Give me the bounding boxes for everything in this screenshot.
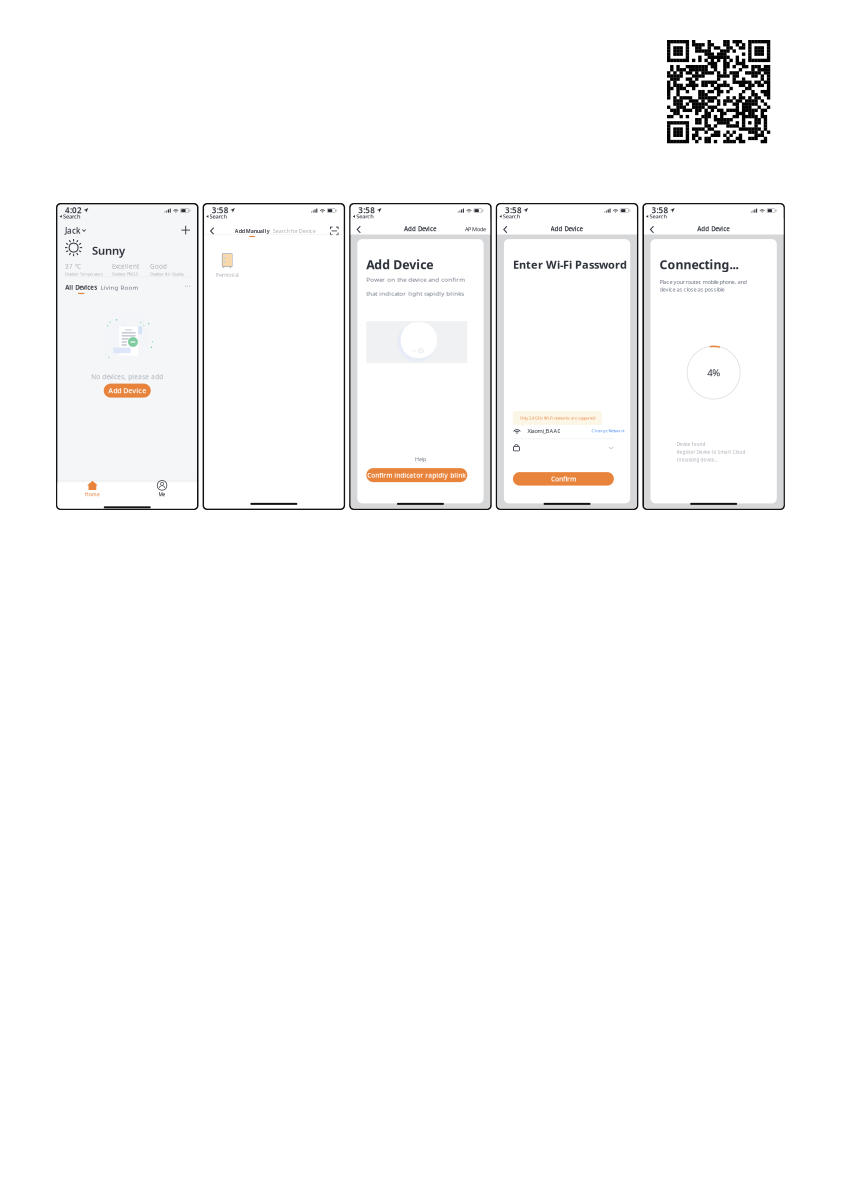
staticText: Change Network xyxy=(591,428,624,433)
staticText: Add Manually xyxy=(235,227,270,235)
button[interactable]: Scan xyxy=(327,224,342,238)
staticText: Connecting... xyxy=(659,256,738,273)
staticText: No devices, please add xyxy=(91,373,163,381)
staticText: Confirm indicator rapidly blink xyxy=(367,471,466,480)
staticText: device as close as possible xyxy=(659,286,724,293)
staticText: Search xyxy=(356,213,374,220)
staticText: Excellent xyxy=(112,262,139,271)
staticText: Place your router, mobile phone, and xyxy=(659,278,746,286)
button[interactable]: Back xyxy=(646,222,658,237)
staticText: Home xyxy=(85,491,100,498)
staticText: AP Mode xyxy=(465,225,486,233)
staticText: Only 2.4 GHz Wi-Fi networks are supporte… xyxy=(520,415,595,421)
staticText: Device found xyxy=(676,441,705,447)
button[interactable]: Jack xyxy=(62,223,89,238)
staticText: Outdoor Temperature xyxy=(65,271,103,277)
staticText: 3:58 xyxy=(212,205,229,216)
staticText: All Devices xyxy=(65,283,97,291)
button[interactable]: Back xyxy=(206,224,218,239)
staticText: Add Device xyxy=(108,386,146,395)
button[interactable]: Home xyxy=(58,478,127,500)
staticText: Search for Device xyxy=(273,227,316,235)
button[interactable]: Search for Device xyxy=(272,226,317,236)
staticText: Jack xyxy=(65,225,80,236)
staticText: Outdoor PM2.5 xyxy=(112,271,138,277)
staticText: 3:58 xyxy=(651,205,668,216)
button[interactable]: Change Network xyxy=(591,428,624,433)
button[interactable]: Confirm xyxy=(513,472,614,486)
staticText: Thermostat xyxy=(215,272,239,278)
staticText: Confirm xyxy=(551,474,576,483)
button[interactable]: Add xyxy=(178,223,193,237)
button[interactable]: Add Manually xyxy=(234,226,271,239)
staticText: Sunny xyxy=(92,243,125,258)
staticText: Register Device to Smart Cloud xyxy=(676,449,745,455)
staticText: Search xyxy=(649,213,667,220)
button[interactable]: Add Device xyxy=(104,384,151,398)
staticText: Add Device xyxy=(366,256,433,273)
button[interactable]: AP Mode xyxy=(463,223,488,235)
staticText: Search xyxy=(63,213,81,220)
staticText: Xiaomi_BAA0 xyxy=(527,427,560,435)
button[interactable]: All Devices xyxy=(63,281,99,294)
button[interactable]: More xyxy=(181,282,194,290)
button[interactable]: Confirm indicator rapidly blink xyxy=(366,468,467,482)
staticText: Power on the device and confirm xyxy=(366,275,465,283)
button[interactable]: Back xyxy=(353,222,365,237)
staticText: Good xyxy=(150,262,167,271)
staticText: Outdoor Air Quality xyxy=(150,271,184,277)
staticText: 3:58 xyxy=(505,205,522,216)
staticText: 4% xyxy=(707,366,720,379)
staticText: Search xyxy=(503,213,521,220)
staticText: Add Device xyxy=(404,225,437,233)
staticText: Me xyxy=(159,491,166,498)
staticText: 4:02 xyxy=(65,205,82,216)
staticText: Help xyxy=(415,456,426,463)
staticText: 37 ºC xyxy=(65,262,81,271)
button[interactable]: Living Room xyxy=(99,281,141,293)
button[interactable]: Help xyxy=(357,454,484,465)
button[interactable]: Thermostat xyxy=(211,253,243,278)
staticText: 3:58 xyxy=(358,205,375,216)
staticText: Initializing device... xyxy=(676,457,717,463)
button[interactable]: Back xyxy=(499,222,511,237)
staticText: Add Device xyxy=(697,225,730,233)
staticText: that indicator light rapidly blinks xyxy=(366,289,464,297)
staticText: Search xyxy=(210,213,228,220)
button[interactable]: Me xyxy=(127,478,197,500)
staticText: Living Room xyxy=(101,283,139,291)
staticText: Add Device xyxy=(551,225,584,233)
staticText: Enter Wi-Fi Password xyxy=(513,257,627,272)
